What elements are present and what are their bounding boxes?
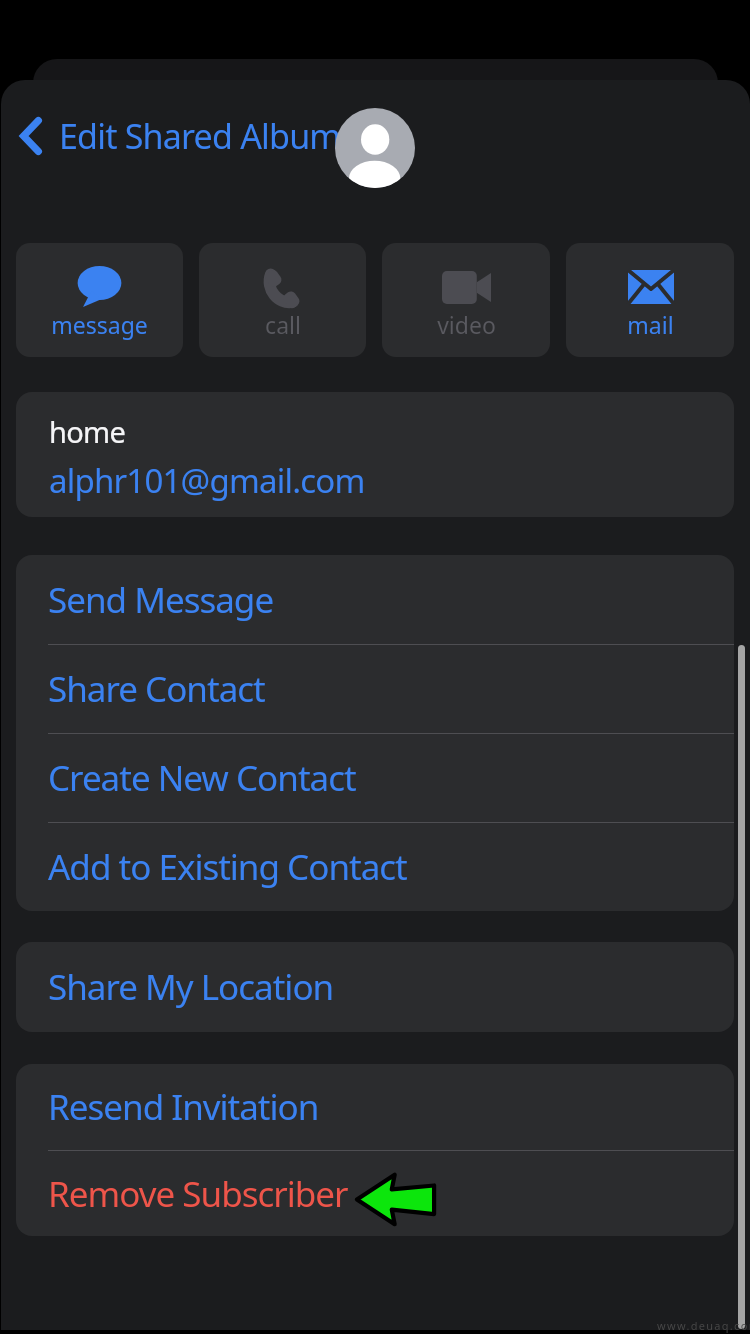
staticText: Share Contact — [48, 665, 265, 713]
staticText: www.deuaq.com — [657, 1318, 750, 1333]
button[interactable]: home — [16, 392, 734, 517]
button[interactable]: Add to Existing Contact — [16, 823, 734, 911]
staticText: Edit Shared Album — [59, 113, 341, 159]
button[interactable]: call — [199, 243, 366, 357]
staticText: call — [265, 309, 301, 340]
button[interactable]: Share Contact — [16, 645, 734, 733]
button[interactable]: Share My Location — [16, 942, 734, 1032]
button[interactable]: Send Message — [16, 555, 734, 644]
staticText: Share My Location — [48, 963, 334, 1011]
staticText: Send Message — [48, 576, 274, 624]
button[interactable]: mail — [566, 243, 734, 357]
staticText: message — [51, 309, 148, 340]
button[interactable]: message — [16, 243, 183, 357]
staticText: Add to Existing Contact — [48, 843, 407, 891]
button[interactable]: Remove Subscriber — [16, 1151, 734, 1236]
staticText: mail — [627, 309, 674, 340]
button[interactable]: video — [382, 243, 550, 357]
other: Contact avatar — [335, 108, 415, 188]
staticText: Remove Subscriber — [48, 1170, 348, 1218]
staticText: home — [49, 412, 126, 451]
button[interactable]: Create New Contact — [16, 734, 734, 822]
staticText: Create New Contact — [48, 754, 356, 802]
staticText: Resend Invitation — [48, 1083, 319, 1131]
button[interactable]: Back to Edit Shared Album — [14, 104, 347, 168]
button[interactable]: Resend Invitation — [16, 1064, 734, 1150]
staticText: video — [437, 309, 496, 340]
staticText: alphr101@gmail.com — [49, 458, 365, 503]
